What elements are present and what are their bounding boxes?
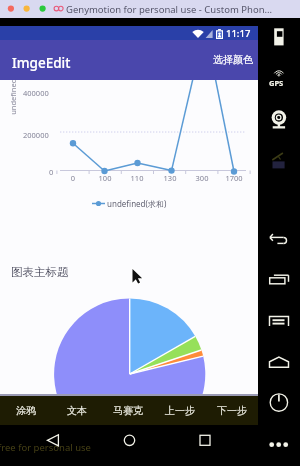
button[interactable]: Recent apps bbox=[190, 430, 220, 460]
button[interactable]: Back bbox=[38, 430, 68, 460]
button[interactable]: Power bbox=[267, 392, 291, 413]
staticText: 上一步 bbox=[165, 404, 195, 417]
staticText: 110 bbox=[125, 173, 149, 183]
staticText: 1700 bbox=[222, 173, 246, 183]
staticText: 选择颜色 bbox=[213, 53, 253, 66]
staticText: 100 bbox=[93, 173, 117, 183]
button[interactable]: More options bbox=[267, 438, 291, 451]
staticText: 130 bbox=[158, 173, 182, 183]
staticText: 0 bbox=[49, 167, 54, 177]
button[interactable]: Camera bbox=[267, 108, 291, 130]
staticText: 11:17 bbox=[226, 27, 251, 40]
button[interactable]: GPS bbox=[267, 70, 291, 86]
staticText: 0 bbox=[61, 173, 85, 183]
button[interactable]: Menu bbox=[267, 313, 291, 328]
staticText: 涂鸦 bbox=[16, 404, 36, 417]
staticText: 400000 bbox=[23, 88, 49, 98]
button[interactable]: 马赛克 bbox=[102, 396, 154, 425]
staticText: 下一步 bbox=[217, 404, 247, 417]
button[interactable]: Battery bbox=[267, 28, 291, 46]
staticText: 马赛克 bbox=[113, 404, 143, 417]
button[interactable]: 文本 bbox=[51, 396, 102, 425]
staticText: 300 bbox=[190, 173, 214, 183]
button[interactable]: Record screen bbox=[267, 151, 291, 170]
staticText: GPS bbox=[269, 78, 284, 88]
button[interactable]: Home bbox=[114, 430, 144, 460]
button[interactable]: 下一步 bbox=[206, 396, 258, 425]
staticText: undefined(求和) bbox=[107, 198, 167, 209]
button[interactable]: Recent apps bbox=[267, 272, 291, 287]
staticText: ImgeEdit bbox=[12, 54, 71, 72]
button[interactable]: Home bbox=[267, 355, 291, 369]
staticText: 200000 bbox=[23, 130, 49, 140]
staticText: Genymotion for personal use - Custom Pho… bbox=[66, 3, 273, 16]
button[interactable]: 上一步 bbox=[154, 396, 206, 425]
staticText: 图表主标题 bbox=[11, 265, 69, 279]
staticText: free for personal use bbox=[0, 441, 91, 454]
button[interactable]: 选择颜色 bbox=[205, 45, 261, 74]
button[interactable]: 涂鸦 bbox=[0, 396, 51, 425]
button[interactable]: Back bbox=[267, 231, 291, 247]
staticText: undefined(求和) bbox=[8, 80, 18, 118]
staticText: 文本 bbox=[67, 404, 87, 417]
